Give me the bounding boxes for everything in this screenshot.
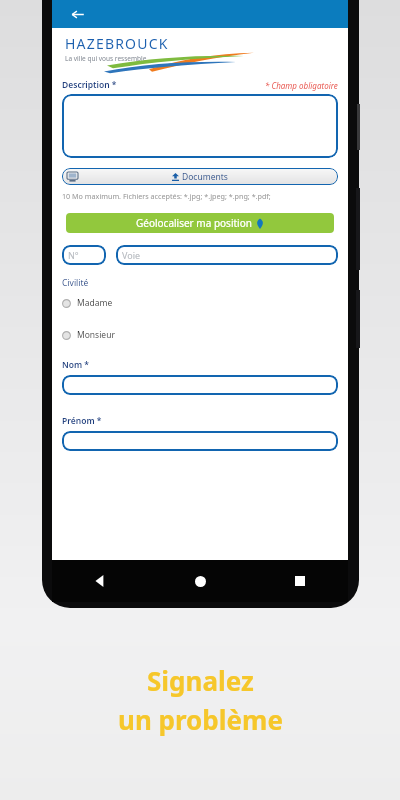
button[interactable] [62, 375, 338, 395]
staticText: Voie [122, 249, 141, 261]
staticText: La ville qui vous ressemble [65, 54, 147, 63]
staticText: N° [68, 249, 79, 261]
button[interactable]: Madame [62, 297, 113, 309]
staticText: Monsieur [77, 329, 115, 341]
staticText: Documents [182, 171, 228, 183]
staticText: Description * [62, 79, 117, 91]
button[interactable]: Documents [62, 168, 338, 185]
staticText: * Champ obligatoire [265, 80, 338, 91]
button[interactable]: Recent apps [282, 563, 318, 599]
button[interactable] [62, 431, 338, 451]
staticText: Signalez [147, 663, 254, 698]
staticText: HAZEBROUCK [65, 34, 169, 53]
staticText: un problème [118, 702, 283, 737]
staticText: Géolocaliser ma position [136, 216, 252, 230]
staticText: 10 Mo maximum. Fichiers acceptés: *.jpg;… [62, 191, 271, 201]
button[interactable]: Géolocaliser ma position [66, 213, 334, 233]
staticText: Nom * [62, 359, 89, 371]
button[interactable]: Home [182, 563, 218, 599]
button[interactable] [62, 94, 338, 158]
button[interactable]: Back [60, 0, 94, 28]
button[interactable]: N° [62, 245, 106, 265]
staticText: Madame [77, 297, 113, 309]
button[interactable]: Monsieur [62, 329, 115, 341]
staticText: Civilité [62, 277, 89, 289]
button[interactable]: Voie [116, 245, 338, 265]
staticText: Prénom * [62, 415, 102, 427]
button[interactable]: Back [82, 563, 118, 599]
